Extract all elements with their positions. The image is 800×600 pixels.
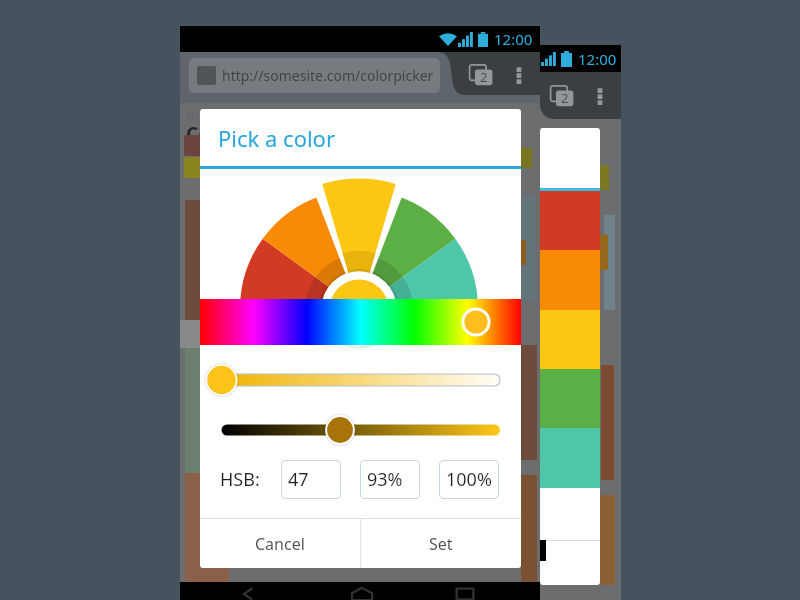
staticText: 12:00 xyxy=(494,29,533,49)
button[interactable]: http://somesite.com/colorpicker xyxy=(189,58,440,93)
button[interactable]: Cancel xyxy=(200,519,360,568)
button[interactable]: Recents xyxy=(451,585,479,600)
staticText: 12:00 xyxy=(578,49,617,69)
staticText: Colors xyxy=(186,121,246,147)
staticText: 100% xyxy=(446,467,492,492)
button[interactable]: 100% xyxy=(439,460,499,499)
staticText: 2 xyxy=(561,89,569,107)
button[interactable]: Home xyxy=(348,585,376,600)
button[interactable]: Tabs xyxy=(466,60,496,90)
staticText: HSB: xyxy=(220,467,260,492)
staticText: Cancel xyxy=(255,533,305,555)
staticText: Browser test xyxy=(186,106,263,124)
staticText: http://somesite.com/colorpicker xyxy=(222,66,434,85)
staticText: / #ffcc00 xyxy=(186,143,239,161)
button[interactable]: Tabs xyxy=(547,81,577,111)
staticText: Pick a color xyxy=(218,123,336,153)
staticText: Set xyxy=(429,533,453,555)
button[interactable]: 93% xyxy=(360,460,420,499)
button[interactable]: Back xyxy=(235,585,263,600)
button[interactable]: 47 xyxy=(281,460,341,499)
button[interactable]: More options xyxy=(509,64,529,84)
button[interactable]: More options xyxy=(590,85,610,105)
button[interactable]: Set xyxy=(361,519,521,568)
staticText: 2 xyxy=(480,68,488,86)
staticText: 93% xyxy=(367,467,403,492)
staticText: 47 xyxy=(288,467,309,492)
